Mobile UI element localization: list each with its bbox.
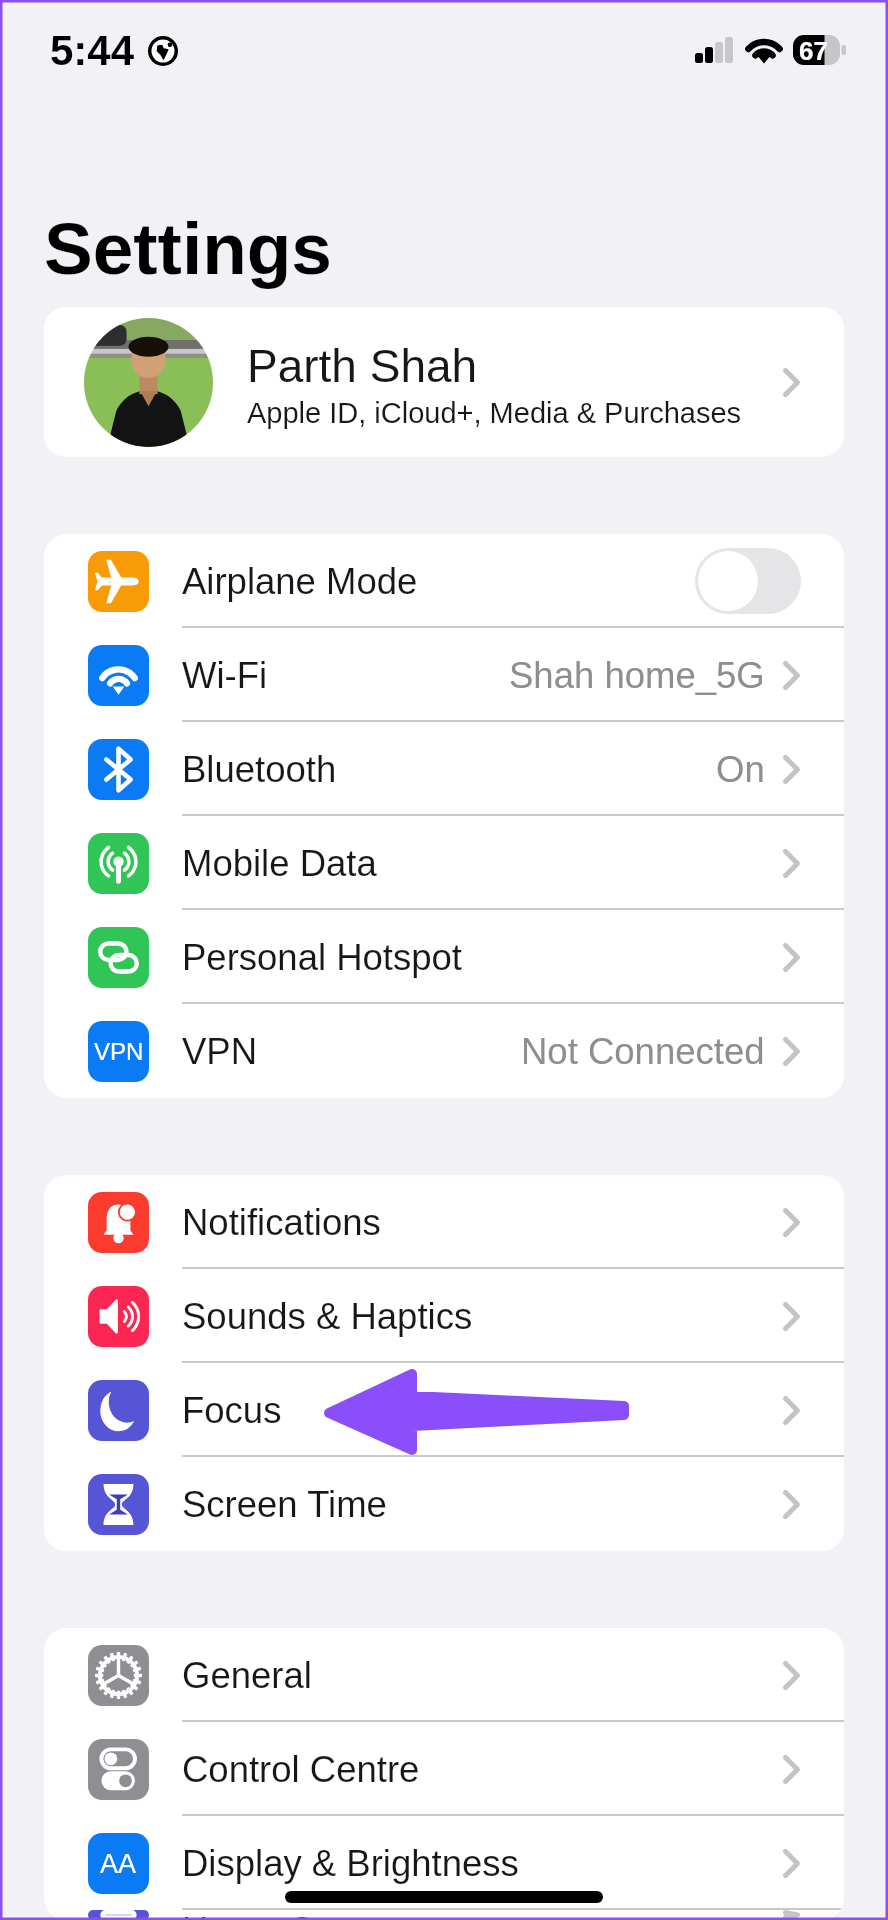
button[interactable]: Wi-Fi (44, 628, 844, 722)
button[interactable]: Parth Shah (44, 307, 844, 457)
staticText: Airplane Mode (182, 561, 418, 602)
staticText: Parth Shah (247, 340, 478, 391)
staticText: Bluetooth (182, 749, 337, 790)
button[interactable]: AA (44, 1816, 844, 1910)
staticText: Shah home_5G (509, 655, 765, 696)
button[interactable]: Notifications (44, 1175, 844, 1269)
staticText: General (182, 1655, 312, 1696)
button[interactable]: Home Screen (44, 1910, 844, 1920)
button[interactable]: Screen Time (44, 1457, 844, 1551)
staticText: Mobile Data (182, 843, 377, 884)
staticText: Not Connected (521, 1031, 765, 1072)
button[interactable]: Control Centre (44, 1722, 844, 1816)
button[interactable]: Airplane Mode toggle (695, 548, 801, 614)
staticText: Home Screen (182, 1910, 406, 1920)
staticText: Sounds & Haptics (182, 1296, 473, 1337)
button[interactable]: Mobile Data (44, 816, 844, 910)
button[interactable]: Personal Hotspot (44, 910, 844, 1004)
staticText: Control Centre (182, 1749, 420, 1790)
staticText: Display & Brightness (182, 1843, 519, 1884)
staticText: Apple ID, iCloud+, Media & Purchases (247, 397, 742, 429)
staticText: Screen Time (182, 1484, 387, 1525)
button[interactable]: General (44, 1628, 844, 1722)
staticText: 67 (799, 36, 828, 65)
staticText: 5:44 (50, 27, 135, 74)
staticText: VPN (182, 1031, 258, 1072)
staticText: Notifications (182, 1202, 381, 1243)
staticText: Settings (44, 208, 332, 290)
staticText: Wi-Fi (182, 655, 268, 696)
button[interactable]: VPN (44, 1004, 844, 1098)
staticText: On (716, 749, 765, 790)
button[interactable]: Airplane Mode (44, 534, 844, 628)
button[interactable]: Sounds & Haptics (44, 1269, 844, 1363)
staticText: Focus (182, 1390, 282, 1431)
staticText: Personal Hotspot (182, 937, 462, 978)
button[interactable]: Focus (44, 1363, 844, 1457)
staticText: VPN (94, 1038, 144, 1065)
staticText: AA (100, 1849, 137, 1879)
button[interactable]: Bluetooth (44, 722, 844, 816)
